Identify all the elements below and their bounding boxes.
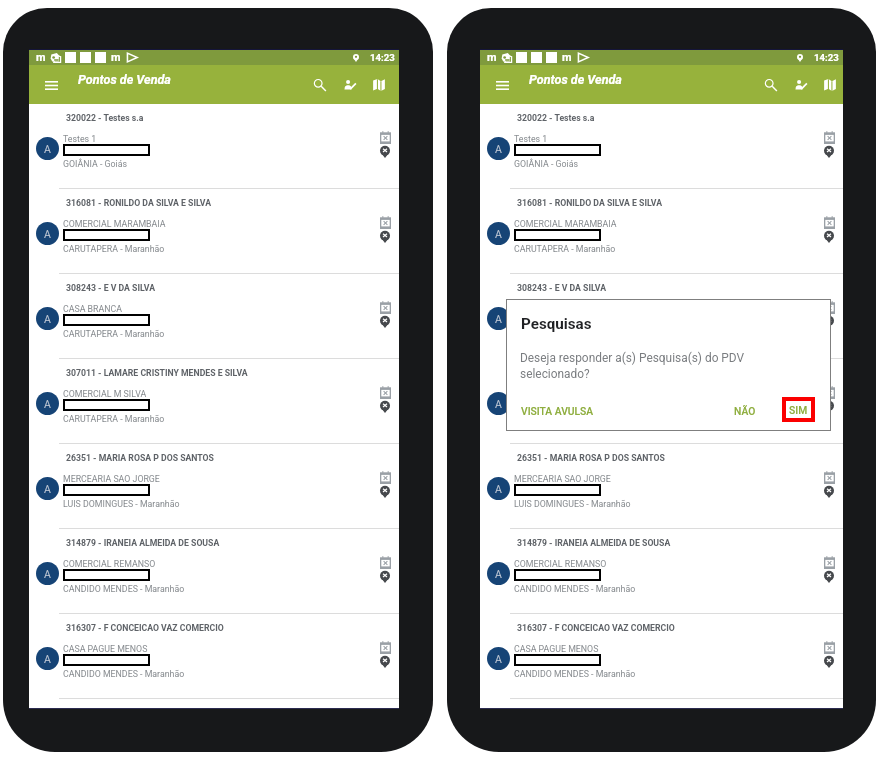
button[interactable]: Map: [364, 65, 394, 104]
button[interactable]: 26351 - MARIA ROSA P DOS SANTOS: [29, 444, 399, 529]
staticText: CARUTAPERA - Maranhão: [63, 414, 165, 424]
staticText: m: [487, 51, 497, 64]
staticText: GOIÂNIA - Goiás: [63, 159, 128, 169]
button[interactable]: 26351 - MARIA ROSA P DOS SANTOS: [480, 444, 843, 529]
staticText: 14:23: [370, 52, 395, 63]
staticText: 320022 - Testes s.a: [66, 113, 144, 123]
staticText: MERCEARIA SAO JORGE: [514, 474, 611, 484]
button[interactable]: 316081 - RONILDO DA SILVA E SILVA: [480, 189, 843, 274]
staticText: A: [495, 653, 502, 665]
button[interactable]: SIM: [782, 397, 815, 422]
staticText: COMERCIAL MARAMBAIA: [514, 219, 617, 229]
staticText: A: [44, 398, 51, 410]
staticText: m: [562, 51, 572, 64]
staticText: Pontos de Venda: [78, 72, 171, 87]
staticText: GOIÂNIA - Goiás: [514, 159, 579, 169]
staticText: 320022 - Testes s.a: [517, 113, 595, 123]
staticText: SIM: [789, 404, 808, 416]
staticText: A: [495, 228, 502, 240]
staticText: 308243 - E V DA SILVA: [66, 283, 156, 293]
button[interactable]: Register point of sale: [786, 65, 816, 104]
staticText: 316307 - F CONCEICAO VAZ COMERCIO: [66, 623, 224, 633]
button[interactable]: 307011 - LAMARE CRISTINY MENDES E SILVA: [480, 359, 843, 444]
staticText: CASA PAGUE MENOS: [514, 644, 599, 654]
staticText: Pesquisas: [521, 315, 592, 333]
staticText: m: [111, 51, 121, 64]
staticText: A: [495, 398, 502, 410]
staticText: CANDIDO MENDES - Maranhão: [63, 584, 185, 594]
staticText: CARUTAPERA - Maranhão: [63, 244, 165, 254]
staticText: CARUTAPERA - Maranhão: [514, 244, 616, 254]
button[interactable]: NÃO: [734, 405, 756, 417]
button[interactable]: 308243 - E V DA SILVA: [29, 274, 399, 359]
staticText: VISITA AVULSA: [521, 405, 594, 417]
staticText: 307011 - LAMARE CRISTINY MENDES E SILVA: [517, 368, 699, 378]
button[interactable]: VISITA AVULSA: [521, 405, 594, 417]
button[interactable]: Search: [756, 65, 786, 104]
staticText: 26351 - MARIA ROSA P DOS SANTOS: [66, 453, 214, 463]
button[interactable]: 316307 - F CONCEICAO VAZ COMERCIO: [29, 614, 399, 699]
button[interactable]: 307011 - LAMARE CRISTINY MENDES E SILVA: [29, 359, 399, 444]
staticText: Testes 1: [63, 134, 97, 144]
staticText: A: [44, 143, 51, 155]
staticText: A: [44, 228, 51, 240]
staticText: 314879 - IRANEIA ALMEIDA DE SOUSA: [66, 538, 220, 548]
staticText: 26351 - MARIA ROSA P DOS SANTOS: [517, 453, 665, 463]
staticText: CARUTAPERA - Maranhão: [63, 329, 165, 339]
staticText: CANDIDO MENDES - Maranhão: [514, 584, 636, 594]
button[interactable]: 308243 - E V DA SILVA: [480, 274, 843, 359]
button[interactable]: Register point of sale: [335, 65, 365, 104]
staticText: 316081 - RONILDO DA SILVA E SILVA: [517, 198, 663, 208]
staticText: NÃO: [734, 405, 756, 417]
staticText: CARUTAPERA - Maranhão: [514, 329, 616, 339]
staticText: m: [36, 51, 46, 64]
button[interactable]: 320022 - Testes s.a: [29, 104, 399, 189]
button[interactable]: Open navigation menu: [36, 70, 66, 100]
staticText: A: [44, 653, 51, 665]
staticText: A: [44, 483, 51, 495]
button[interactable]: Search: [305, 65, 335, 104]
staticText: A: [44, 568, 51, 580]
staticText: CASA BRANCA: [63, 304, 122, 314]
staticText: LUIS DOMINGUES - Maranhão: [63, 499, 180, 509]
button[interactable]: 314879 - IRANEIA ALMEIDA DE SOUSA: [480, 529, 843, 614]
staticText: A: [495, 568, 502, 580]
staticText: Testes 1: [514, 134, 548, 144]
staticText: A: [495, 143, 502, 155]
staticText: COMERCIAL REMANSO: [514, 559, 607, 569]
staticText: 308243 - E V DA SILVA: [517, 283, 607, 293]
button[interactable]: Map: [815, 65, 845, 104]
staticText: A: [495, 313, 502, 325]
staticText: Deseja responder a(s) Pesquisa(s) do PDV…: [520, 351, 745, 381]
staticText: COMERCIAL M SILVA: [63, 389, 147, 399]
staticText: A: [495, 483, 502, 495]
button[interactable]: Open navigation menu: [487, 70, 517, 100]
staticText: LUIS DOMINGUES - Maranhão: [514, 499, 631, 509]
button[interactable]: 314879 - IRANEIA ALMEIDA DE SOUSA: [29, 529, 399, 614]
staticText: 14:23: [814, 52, 839, 63]
staticText: 316307 - F CONCEICAO VAZ COMERCIO: [517, 623, 675, 633]
staticText: COMERCIAL MARAMBAIA: [63, 219, 166, 229]
staticText: A: [44, 313, 51, 325]
staticText: CANDIDO MENDES - Maranhão: [514, 669, 636, 679]
staticText: CANDIDO MENDES - Maranhão: [63, 669, 185, 679]
button[interactable]: 316307 - F CONCEICAO VAZ COMERCIO: [480, 614, 843, 699]
staticText: 307011 - LAMARE CRISTINY MENDES E SILVA: [66, 368, 248, 378]
staticText: COMERCIAL REMANSO: [63, 559, 156, 569]
staticText: 316081 - RONILDO DA SILVA E SILVA: [66, 198, 212, 208]
button[interactable]: 320022 - Testes s.a: [480, 104, 843, 189]
staticText: 314879 - IRANEIA ALMEIDA DE SOUSA: [517, 538, 671, 548]
staticText: CARUTAPERA - Maranhão: [514, 414, 616, 424]
staticText: CASA PAGUE MENOS: [63, 644, 148, 654]
staticText: MERCEARIA SAO JORGE: [63, 474, 160, 484]
staticText: Pontos de Venda: [529, 72, 622, 87]
button[interactable]: 316081 - RONILDO DA SILVA E SILVA: [29, 189, 399, 274]
